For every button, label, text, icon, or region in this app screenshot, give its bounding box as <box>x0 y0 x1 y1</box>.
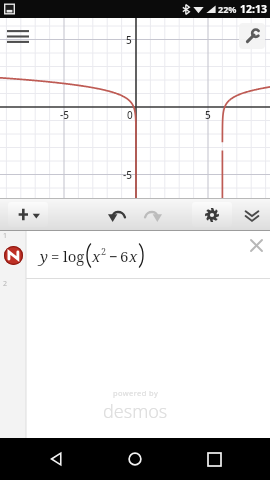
button[interactable]: Back <box>33 438 79 480</box>
button[interactable]: Settings <box>192 202 232 227</box>
staticText: log <box>63 246 85 266</box>
staticText: = <box>51 246 60 266</box>
button[interactable]: 1 <box>0 231 270 279</box>
button[interactable]: Redo <box>138 202 168 228</box>
button[interactable]: Menu <box>3 21 33 51</box>
staticText: 12:13 <box>240 2 267 16</box>
staticText: 2 <box>101 245 107 257</box>
staticText: x <box>92 246 101 266</box>
staticText: -5 <box>123 168 132 182</box>
button[interactable]: Home <box>112 438 158 480</box>
button[interactable]: Collapse keypad <box>237 200 267 230</box>
staticText: 0 <box>127 108 133 122</box>
staticText: 22% <box>218 3 237 15</box>
staticText: − <box>109 246 118 266</box>
staticText: 1 <box>3 231 8 241</box>
button[interactable]: Add expression <box>8 202 48 227</box>
button[interactable]: 2 <box>0 279 270 319</box>
staticText: -5 <box>60 108 69 122</box>
button[interactable]: Undo <box>102 202 132 228</box>
staticText: 5 <box>126 33 132 47</box>
staticText: 6 <box>120 246 129 266</box>
staticText: y <box>40 246 48 266</box>
staticText: powered by <box>113 388 159 398</box>
button[interactable]: Recent apps <box>191 438 237 480</box>
staticText: 5 <box>205 108 211 122</box>
staticText: desmos <box>103 399 168 424</box>
button[interactable]: Graph settings <box>239 23 265 49</box>
staticText: 2 <box>3 279 8 289</box>
button[interactable]: Delete expression <box>246 235 266 255</box>
button[interactable]: Toggle graph visibility <box>4 246 23 265</box>
staticText: x <box>129 246 138 266</box>
